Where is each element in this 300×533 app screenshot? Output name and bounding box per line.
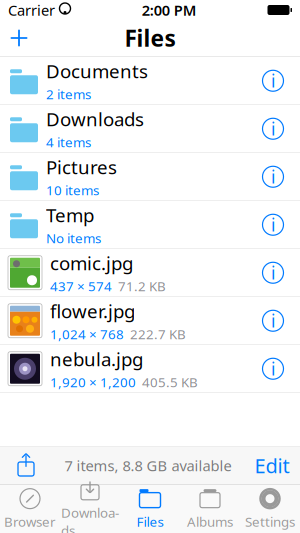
button[interactable]: More info: [258, 64, 288, 98]
staticText: comic.jpg: [50, 250, 133, 275]
staticText: i: [271, 165, 275, 188]
staticText: 405.5 KB: [142, 373, 198, 391]
button[interactable]: Albums: [180, 485, 240, 533]
staticText: 4 items: [46, 133, 91, 151]
button[interactable]: More info: [258, 352, 288, 386]
staticText: 71.2 KB: [118, 277, 166, 295]
staticText: i: [271, 69, 275, 92]
staticText: flower.jpg: [50, 298, 135, 323]
staticText: Pictures: [46, 154, 117, 179]
button[interactable]: More info: [258, 256, 288, 290]
staticText: 2 items: [46, 85, 91, 103]
staticText: Downloads: [46, 106, 144, 131]
button[interactable]: Files: [120, 485, 180, 533]
button[interactable]: More info: [258, 160, 288, 194]
button[interactable]: More info: [258, 208, 288, 242]
staticText: nebula.jpg: [50, 346, 143, 371]
staticText: 1,024 × 768: [50, 325, 124, 343]
staticText: Downloads: [61, 504, 119, 533]
staticText: Edit: [254, 452, 289, 479]
button[interactable]: nebula.jpg: [0, 345, 300, 393]
button[interactable]: Browser: [0, 485, 60, 533]
button[interactable]: Add: [0, 21, 38, 55]
button[interactable]: comic.jpg: [0, 249, 300, 297]
button[interactable]: Downloads: [60, 485, 120, 533]
staticText: i: [271, 357, 275, 380]
button[interactable]: Downloads: [0, 105, 300, 153]
staticText: Settings: [245, 513, 295, 530]
staticText: 222.7 KB: [130, 325, 186, 343]
staticText: 2:00 PM: [142, 0, 197, 20]
staticText: i: [271, 309, 275, 332]
staticText: 1,920 × 1,200: [50, 373, 136, 391]
staticText: i: [271, 117, 275, 140]
staticText: Temp: [46, 202, 94, 227]
staticText: 7 items, 8.8 GB available: [64, 456, 231, 475]
staticText: i: [271, 261, 275, 284]
button[interactable]: More info: [258, 304, 288, 338]
button[interactable]: Settings: [240, 485, 300, 533]
staticText: Files: [124, 23, 175, 53]
staticText: 437 × 574: [50, 277, 112, 295]
button[interactable]: Temp: [0, 201, 300, 249]
button[interactable]: flower.jpg: [0, 297, 300, 345]
staticText: Carrier: [8, 0, 55, 20]
staticText: i: [271, 213, 275, 236]
staticText: Files: [136, 513, 163, 530]
button[interactable]: More info: [258, 112, 288, 146]
button[interactable]: Pictures: [0, 153, 300, 201]
button[interactable]: Documents: [0, 57, 300, 105]
staticText: 10 items: [46, 181, 99, 199]
button[interactable]: Share: [6, 447, 46, 483]
button[interactable]: Edit: [250, 447, 294, 483]
staticText: Documents: [46, 58, 148, 83]
staticText: Browser: [4, 513, 56, 530]
staticText: No items: [46, 229, 101, 247]
staticText: Albums: [187, 513, 233, 530]
